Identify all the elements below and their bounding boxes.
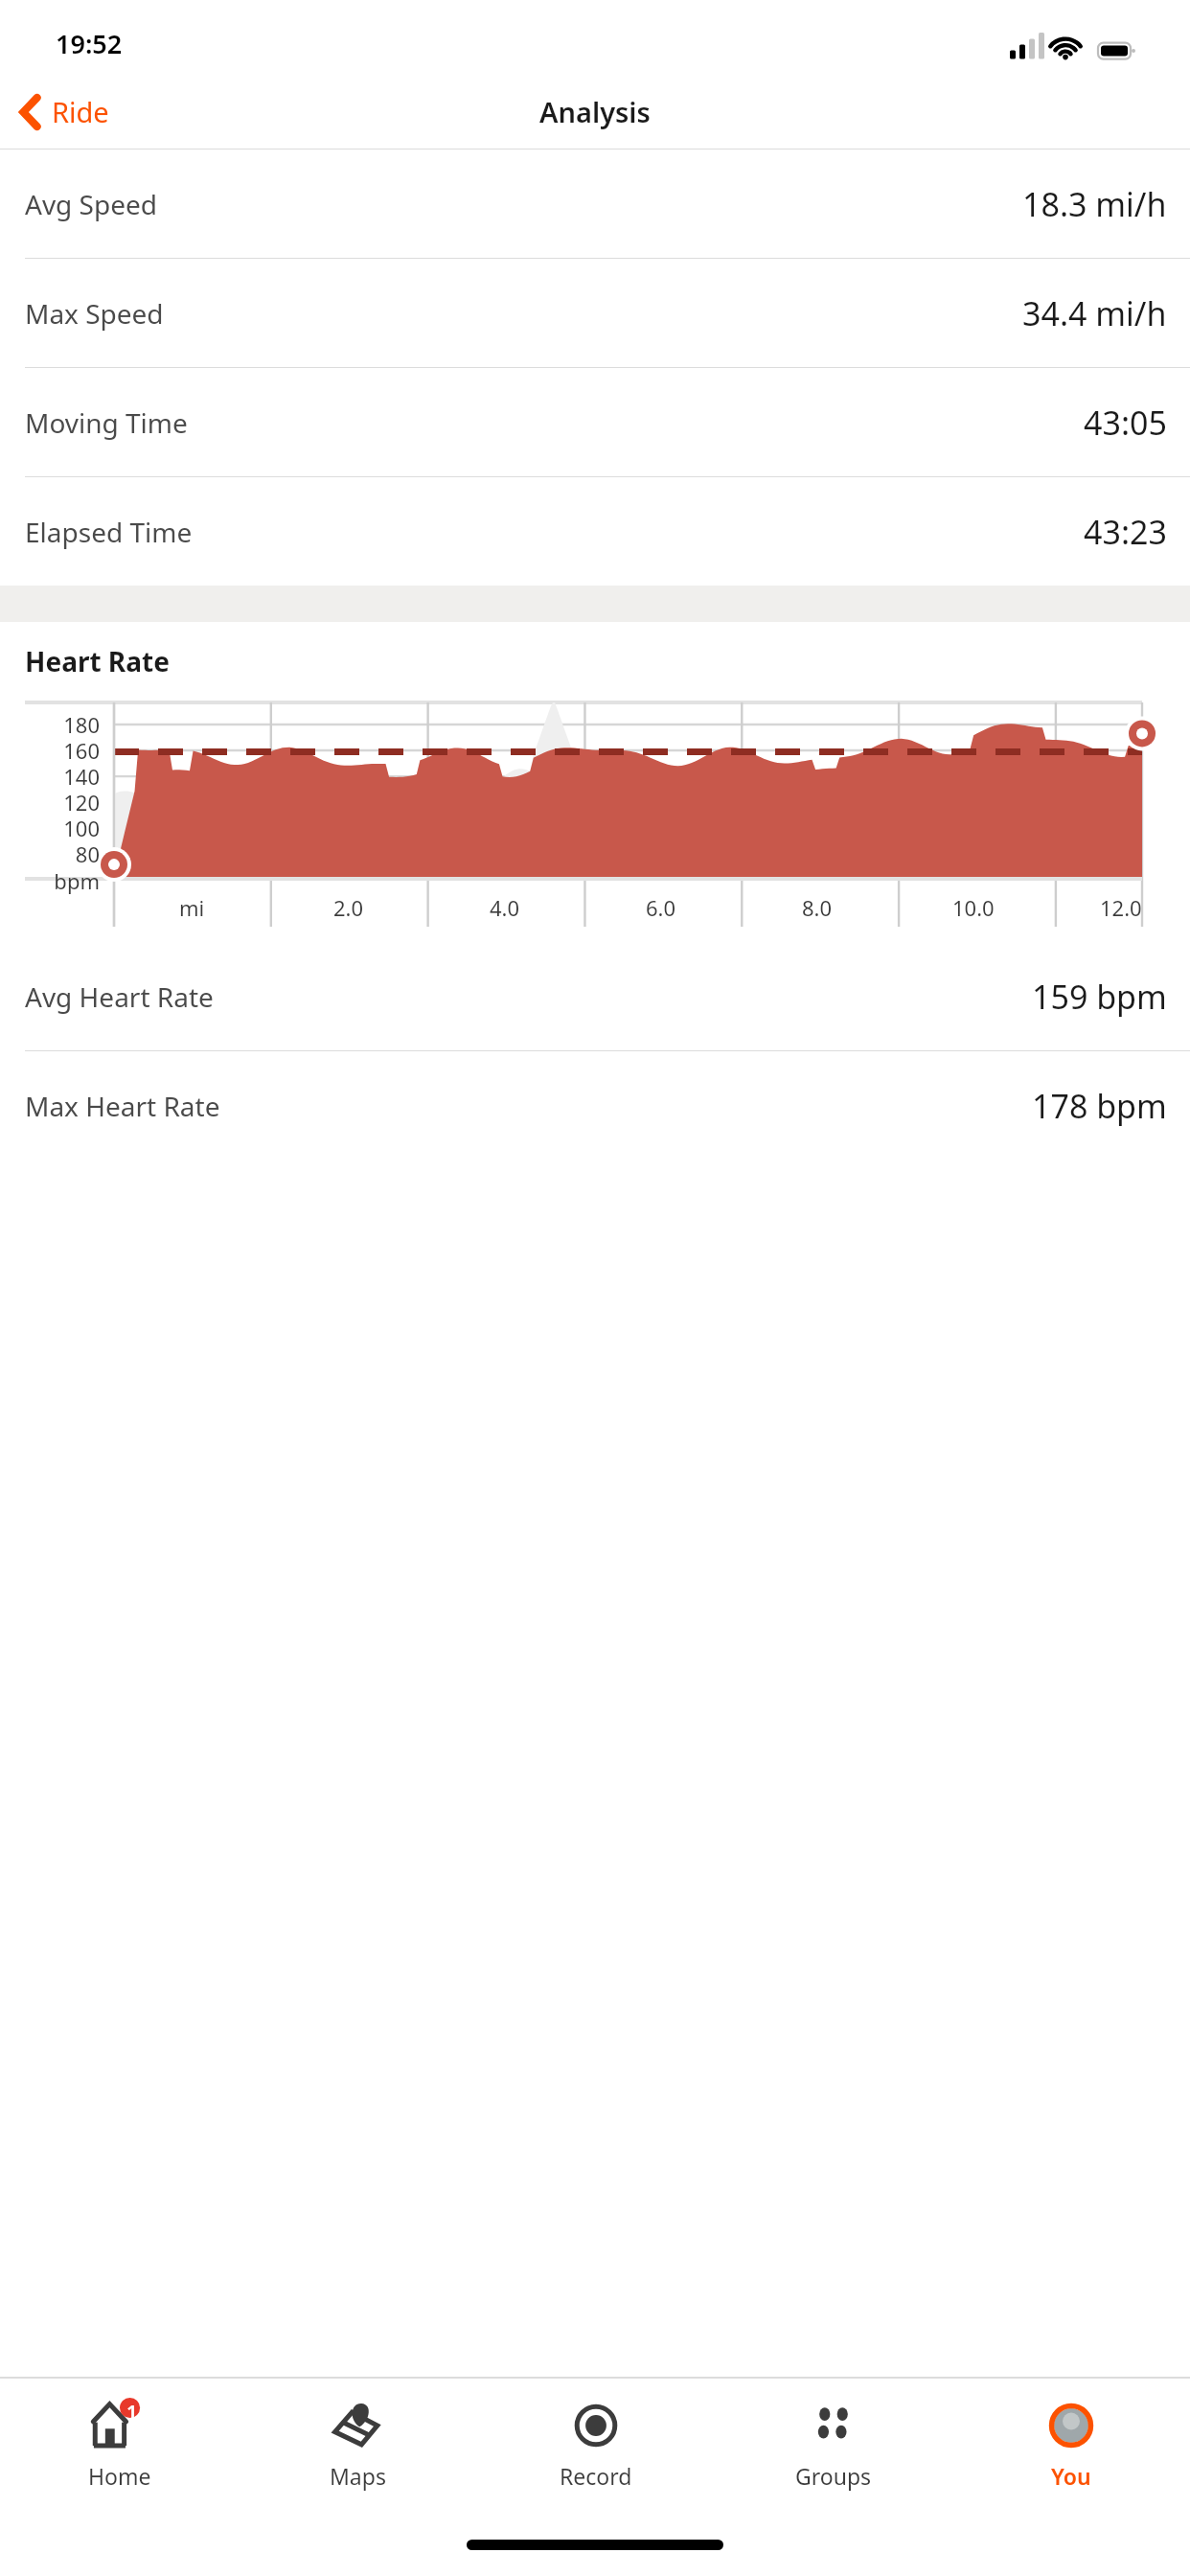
button[interactable]: Avg Speed bbox=[0, 149, 1190, 258]
button[interactable]: Elapsed Time bbox=[0, 477, 1190, 586]
staticText: Maps bbox=[330, 2461, 386, 2491]
button[interactable]: Maps bbox=[239, 2379, 477, 2524]
staticText: Avg Speed bbox=[25, 186, 158, 222]
other: You profile bbox=[1040, 2394, 1103, 2457]
staticText: Ride bbox=[52, 93, 109, 130]
staticText: 2.0 bbox=[333, 893, 364, 922]
staticText: 43:05 bbox=[1084, 401, 1167, 445]
staticText: Max Speed bbox=[25, 295, 164, 332]
staticText: 10.0 bbox=[952, 893, 995, 922]
staticText: 43:23 bbox=[1084, 510, 1167, 554]
button[interactable]: You profile bbox=[952, 2379, 1190, 2524]
staticText: 19:52 bbox=[56, 26, 123, 61]
staticText: Max Heart Rate bbox=[25, 1088, 220, 1124]
staticText: 18.3 mi/h bbox=[1022, 182, 1167, 226]
staticText: 1 bbox=[126, 2399, 138, 2425]
staticText: mi bbox=[179, 893, 205, 922]
staticText: Analysis bbox=[539, 93, 651, 130]
staticText: 34.4 mi/h bbox=[1022, 291, 1167, 335]
staticText: 6.0 bbox=[646, 893, 676, 922]
button[interactable]: Home bbox=[0, 2379, 239, 2524]
other: Home bbox=[88, 2394, 151, 2457]
button[interactable]: Avg Heart Rate bbox=[0, 942, 1190, 1050]
staticText: 120 bbox=[0, 788, 100, 816]
staticText: 140 bbox=[0, 762, 100, 791]
other: Record bbox=[564, 2394, 628, 2457]
button[interactable]: Max Heart Rate bbox=[0, 1051, 1190, 1160]
staticText: bpm bbox=[0, 866, 100, 895]
staticText: 159 bpm bbox=[1032, 975, 1167, 1019]
staticText: Record bbox=[560, 2461, 632, 2491]
staticText: 8.0 bbox=[802, 893, 833, 922]
button[interactable]: Ride bbox=[0, 83, 128, 140]
staticText: 180 bbox=[0, 710, 100, 739]
staticText: Home bbox=[88, 2461, 151, 2491]
staticText: Avg Heart Rate bbox=[25, 978, 214, 1015]
staticText: Heart Rate bbox=[25, 643, 170, 679]
button[interactable]: Max Speed bbox=[0, 259, 1190, 367]
staticText: 100 bbox=[0, 814, 100, 842]
other: Groups bbox=[802, 2394, 865, 2457]
button[interactable]: Record bbox=[477, 2379, 715, 2524]
staticText: 12.0 bbox=[1100, 893, 1142, 922]
staticText: 178 bpm bbox=[1032, 1084, 1167, 1128]
staticText: Groups bbox=[795, 2461, 872, 2491]
button[interactable]: Groups bbox=[715, 2379, 952, 2524]
staticText: 4.0 bbox=[490, 893, 520, 922]
staticText: Elapsed Time bbox=[25, 514, 193, 550]
staticText: Moving Time bbox=[25, 404, 188, 441]
other: Maps bbox=[327, 2394, 390, 2457]
staticText: 80 bbox=[0, 839, 100, 868]
button[interactable]: Moving Time bbox=[0, 368, 1190, 476]
staticText: 160 bbox=[0, 736, 100, 765]
staticText: You bbox=[1051, 2461, 1091, 2491]
